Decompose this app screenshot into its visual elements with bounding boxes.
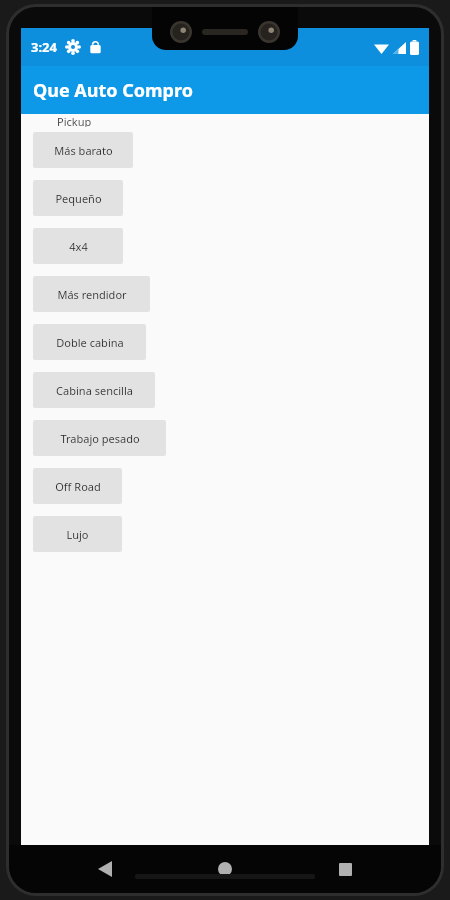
button[interactable]: Pequeño xyxy=(33,180,123,216)
staticText: Más rendidor xyxy=(57,287,127,302)
staticText: Cabina sencilla xyxy=(56,383,133,398)
button[interactable]: Más barato xyxy=(33,132,133,168)
staticText: Off Road xyxy=(55,479,101,494)
button[interactable]: Trabajo pesado xyxy=(33,420,166,456)
staticText: Más barato xyxy=(54,143,113,158)
button[interactable]: Off Road xyxy=(33,468,122,504)
staticText: 4x4 xyxy=(69,239,88,254)
staticText: Lujo xyxy=(66,527,89,542)
button[interactable]: Back xyxy=(81,845,129,893)
staticText: Pequeño xyxy=(55,191,102,206)
staticText: Trabajo pesado xyxy=(60,431,140,446)
button[interactable]: Lujo xyxy=(33,516,122,552)
button[interactable]: Recent apps xyxy=(321,845,369,893)
staticText: Doble cabina xyxy=(56,335,124,350)
button[interactable]: 4x4 xyxy=(33,228,123,264)
button[interactable]: Más rendidor xyxy=(33,276,150,312)
staticText: Pickup xyxy=(57,114,92,127)
staticText: Que Auto Compro xyxy=(33,78,193,103)
staticText: 3:24 xyxy=(31,38,57,56)
button[interactable]: Home xyxy=(201,845,249,893)
button[interactable]: Doble cabina xyxy=(33,324,146,360)
button[interactable]: Cabina sencilla xyxy=(33,372,155,408)
